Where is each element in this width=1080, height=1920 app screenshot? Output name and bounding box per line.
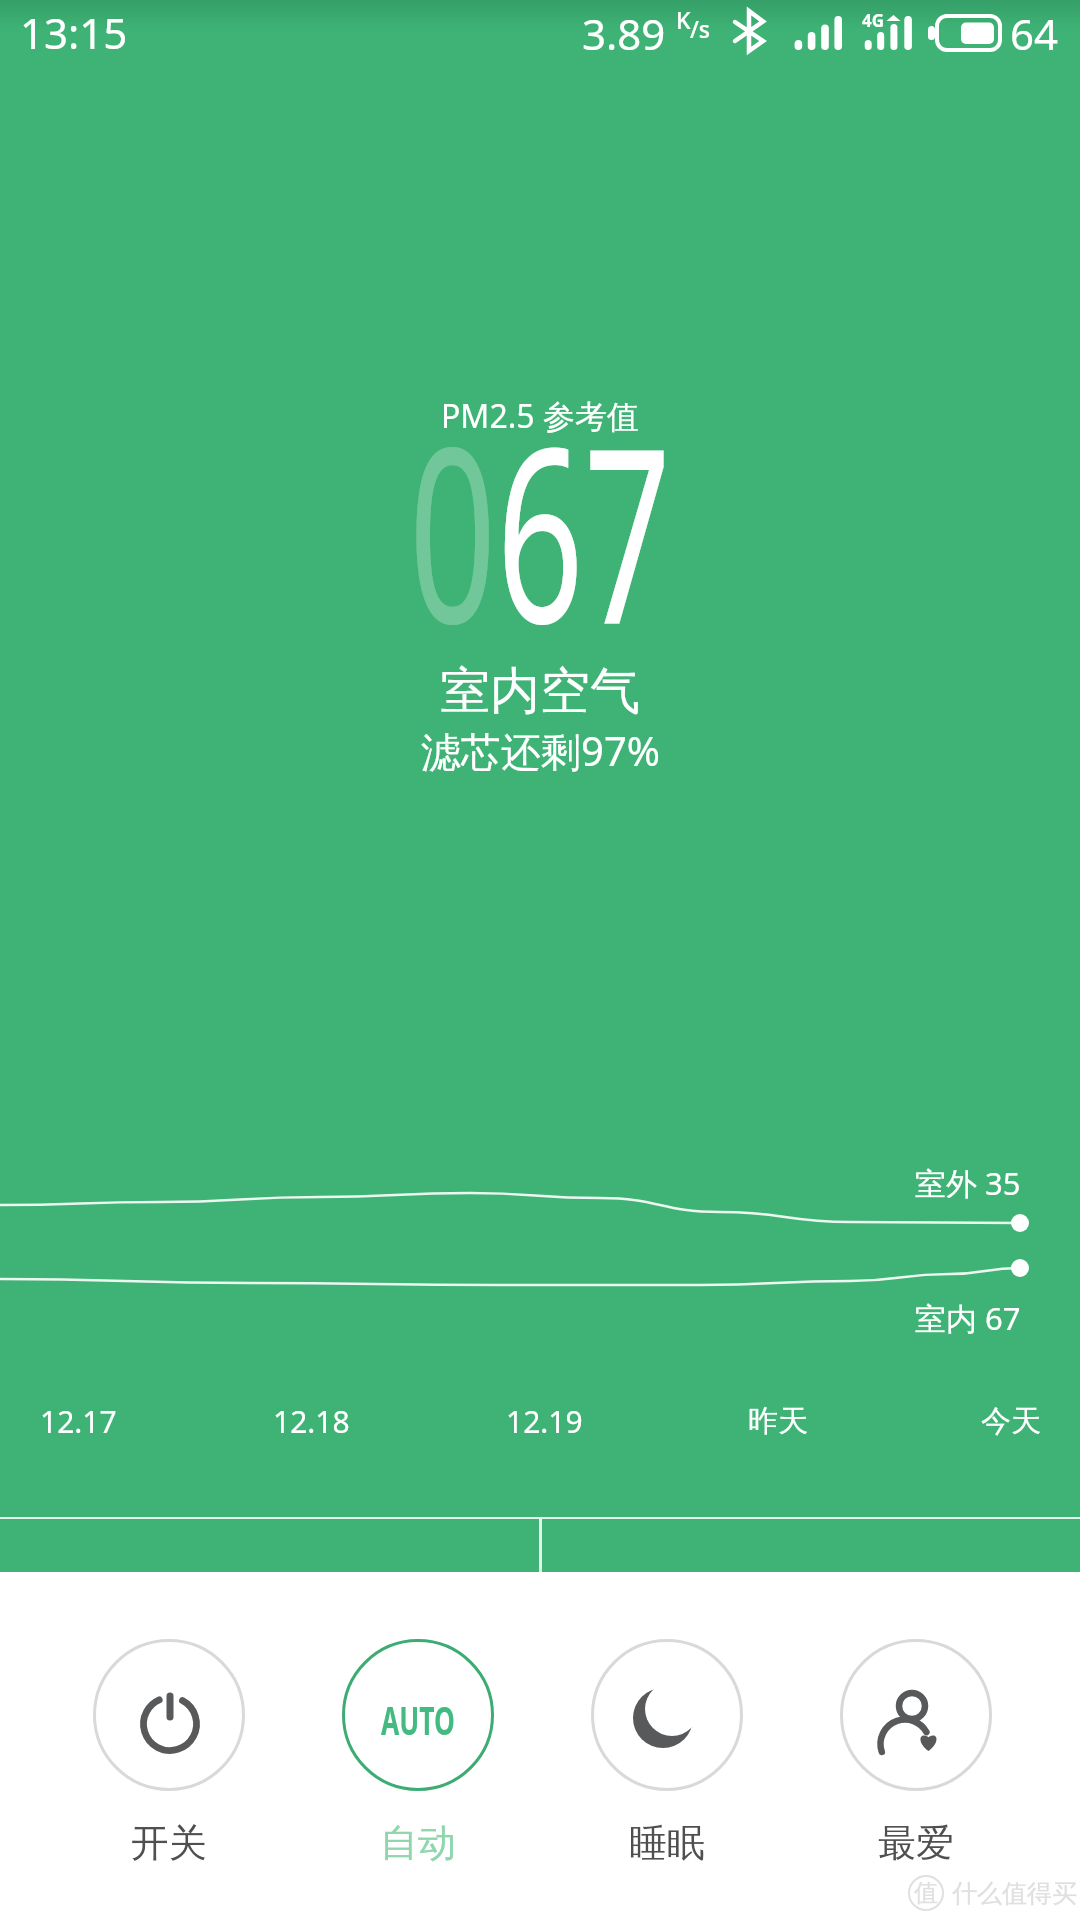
staticText: 12.17 bbox=[40, 1401, 117, 1442]
staticText: AUTO bbox=[381, 1692, 455, 1746]
staticText: 64 bbox=[1010, 5, 1059, 62]
staticText: 67 bbox=[496, 364, 671, 694]
staticText: 自动 bbox=[380, 1819, 456, 1867]
staticText: K bbox=[676, 4, 691, 35]
button[interactable]: 开关 bbox=[93, 1639, 245, 1867]
button[interactable]: AUTO bbox=[342, 1639, 494, 1867]
staticText: 0 bbox=[409, 364, 497, 694]
staticText: 4G bbox=[862, 9, 885, 32]
staticText: 最爱 bbox=[878, 1819, 954, 1867]
staticText: /s bbox=[690, 13, 711, 44]
staticText: 开关 bbox=[131, 1819, 207, 1867]
staticText: 3.89 bbox=[582, 5, 666, 62]
staticText: 值 bbox=[914, 1878, 938, 1908]
button[interactable] bbox=[540, 1517, 1080, 1572]
staticText: 什么值得买 bbox=[952, 1878, 1077, 1909]
staticText: 室内 67 bbox=[915, 1297, 1021, 1339]
staticText: 室外 35 bbox=[915, 1162, 1021, 1204]
staticText: 12.19 bbox=[506, 1401, 583, 1442]
staticText: PM2.5 参考值 bbox=[441, 394, 639, 438]
button[interactable] bbox=[0, 1517, 540, 1572]
staticText: 今天 bbox=[981, 1402, 1041, 1440]
staticText: 室内空气 bbox=[440, 660, 640, 723]
staticText: 昨天 bbox=[748, 1402, 808, 1440]
button[interactable]: 最爱 bbox=[840, 1639, 992, 1867]
staticText: 13:15 bbox=[20, 4, 128, 61]
staticText: 睡眠 bbox=[629, 1819, 705, 1867]
staticText: 12.18 bbox=[273, 1401, 350, 1442]
staticText: 滤芯还剩97% bbox=[421, 723, 660, 778]
button[interactable]: 睡眠 bbox=[591, 1639, 743, 1867]
